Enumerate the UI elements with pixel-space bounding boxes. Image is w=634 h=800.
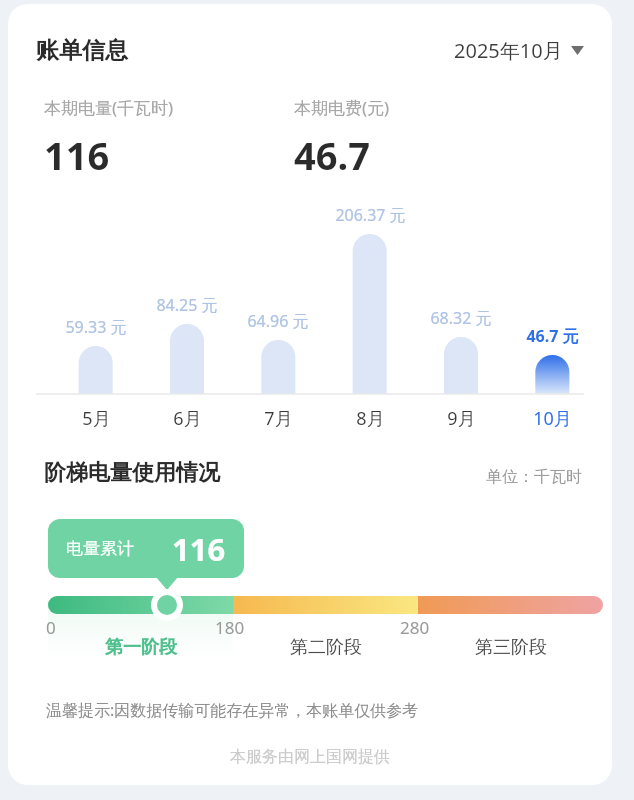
button[interactable]: 6月	[127, 406, 247, 431]
staticText: 8月	[356, 406, 385, 431]
staticText: 10月	[533, 406, 572, 431]
button[interactable]: 2025年10月	[454, 37, 584, 64]
button[interactable]: 第二阶段	[266, 636, 386, 659]
staticText: 59.33 元	[65, 316, 127, 338]
staticText: 116	[44, 129, 110, 181]
button[interactable]: 第一阶段	[81, 636, 201, 659]
button[interactable]: 9月	[401, 406, 521, 431]
staticText: 第二阶段	[290, 636, 362, 659]
staticText: 0	[46, 616, 56, 639]
staticText: 第三阶段	[475, 636, 547, 659]
button[interactable]: 8月	[310, 406, 430, 431]
staticText: 84.25 元	[156, 294, 218, 316]
button[interactable]: 7月	[218, 406, 338, 431]
staticText: 280	[400, 616, 430, 639]
button[interactable]: 第三阶段	[451, 636, 571, 659]
staticText: 6月	[173, 406, 202, 431]
staticText: 206.37 元	[335, 204, 406, 226]
staticText: 7月	[264, 406, 293, 431]
other: 当前电量位置	[151, 589, 183, 621]
staticText: 46.7	[294, 129, 370, 181]
staticText: 阶梯电量使用情况	[44, 459, 220, 487]
staticText: 180	[215, 616, 245, 639]
staticText: 账单信息	[36, 36, 128, 65]
staticText: 64.96 元	[247, 310, 309, 332]
staticText: 2025年10月	[454, 37, 563, 64]
staticText: 温馨提示:因数据传输可能存在异常，本账单仅供参考	[46, 699, 419, 721]
staticText: 9月	[447, 406, 476, 431]
staticText: 单位：千瓦时	[486, 467, 582, 487]
staticText: 68.32 元	[430, 307, 492, 329]
button[interactable]: 10月	[492, 406, 612, 431]
staticText: 116	[172, 528, 226, 570]
staticText: 46.7 元	[526, 325, 579, 347]
staticText: 5月	[82, 406, 111, 431]
staticText: 本服务由网上国网提供	[230, 747, 390, 767]
staticText: 本期电量(千瓦时)	[44, 96, 174, 119]
staticText: 本期电费(元)	[294, 96, 390, 119]
button[interactable]: 电量累计	[48, 519, 244, 578]
button[interactable]: 5月	[36, 406, 156, 431]
staticText: 电量累计	[66, 538, 134, 559]
staticText: 第一阶段	[105, 636, 177, 659]
